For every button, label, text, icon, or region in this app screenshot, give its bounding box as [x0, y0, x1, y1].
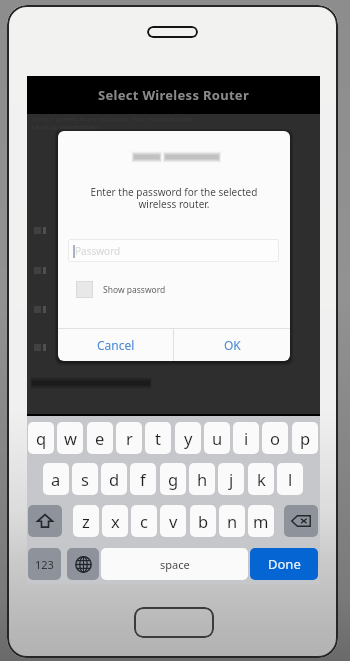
other: Shift	[37, 513, 53, 529]
staticText: z	[82, 510, 90, 532]
button[interactable]: Delete	[284, 505, 318, 537]
staticText: x	[111, 510, 120, 532]
button[interactable]: y	[175, 422, 201, 454]
staticText: 123	[35, 557, 54, 572]
button[interactable]: h	[189, 463, 215, 495]
staticText: Password	[75, 244, 121, 258]
staticText: q	[36, 427, 47, 449]
staticText: n	[227, 510, 238, 532]
button[interactable]: z	[73, 505, 99, 537]
button[interactable]: c	[131, 505, 157, 537]
button[interactable]: g	[160, 463, 186, 495]
button[interactable]: Show password	[76, 281, 166, 298]
staticText: s	[81, 468, 89, 490]
staticText: y	[184, 427, 193, 449]
staticText: Cancel	[97, 337, 135, 353]
staticText: OK	[224, 337, 241, 353]
staticText: k	[257, 468, 266, 490]
staticText: o	[270, 427, 280, 449]
staticText: i	[244, 427, 249, 449]
button[interactable]: i	[233, 422, 259, 454]
button[interactable]: e	[87, 422, 113, 454]
staticText: m	[253, 510, 269, 532]
button[interactable]: OK	[174, 329, 290, 361]
button[interactable]: o	[262, 422, 288, 454]
staticText: w	[64, 427, 77, 449]
staticText: Select a wireless router to connect. You…	[32, 115, 195, 131]
staticText: Done	[268, 555, 301, 573]
button[interactable]: a	[43, 463, 69, 495]
staticText: j	[229, 468, 234, 490]
button[interactable]: f	[130, 463, 156, 495]
button[interactable]: Shift	[28, 505, 62, 537]
staticText: r	[126, 427, 133, 449]
button[interactable]: p	[292, 422, 318, 454]
staticText: t	[155, 427, 161, 449]
staticText: l	[288, 468, 293, 490]
staticText: p	[300, 427, 311, 449]
staticText: Select Wireless Router	[98, 86, 250, 104]
button[interactable]: w	[57, 422, 83, 454]
staticText: Show password	[103, 284, 166, 296]
other: Delete	[291, 511, 311, 531]
staticText: c	[140, 510, 148, 532]
staticText: e	[95, 427, 105, 449]
button[interactable]: d	[101, 463, 127, 495]
button[interactable]: v	[160, 505, 186, 537]
staticText: u	[212, 427, 223, 449]
staticText: a	[51, 468, 61, 490]
button[interactable]: u	[204, 422, 230, 454]
staticText: v	[169, 510, 178, 532]
button[interactable]: s	[72, 463, 98, 495]
button[interactable]: l	[277, 463, 303, 495]
staticText: d	[109, 468, 120, 490]
button[interactable]: Password	[68, 239, 279, 262]
staticText: Enter the password for the selected wire…	[58, 185, 290, 211]
staticText: space	[160, 557, 190, 572]
staticText: f	[140, 468, 146, 490]
button[interactable]: 123	[28, 548, 61, 580]
button[interactable]: b	[190, 505, 216, 537]
button[interactable]: r	[116, 422, 142, 454]
staticText: b	[198, 510, 209, 532]
staticText: g	[168, 468, 179, 490]
button[interactable]: m	[248, 505, 274, 537]
button[interactable]: x	[102, 505, 128, 537]
button[interactable]: n	[219, 505, 245, 537]
button[interactable]: q	[28, 422, 54, 454]
button[interactable]: Change keyboard language	[67, 548, 99, 580]
button[interactable]: Cancel	[58, 329, 173, 361]
button[interactable]: Done	[250, 548, 318, 580]
button[interactable]: k	[248, 463, 274, 495]
button[interactable]: j	[218, 463, 244, 495]
button[interactable]: space	[101, 548, 248, 580]
button[interactable]: t	[145, 422, 171, 454]
staticText: h	[197, 468, 208, 490]
